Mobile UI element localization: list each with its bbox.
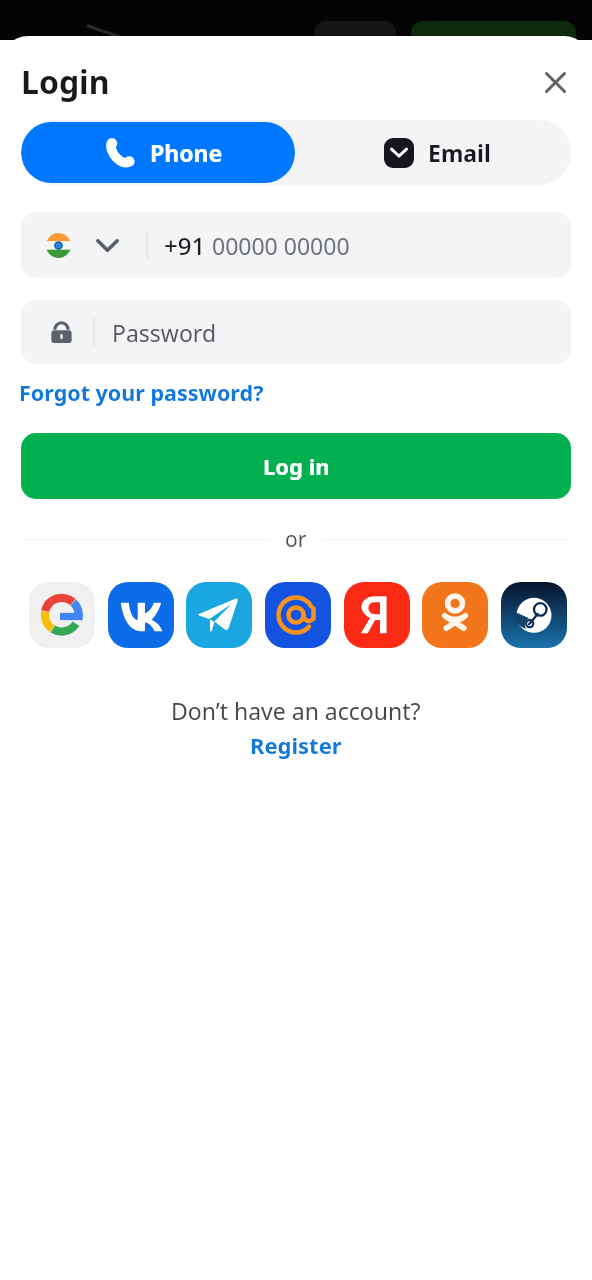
button[interactable]: +91 xyxy=(21,212,571,278)
button[interactable]: Close xyxy=(533,60,577,104)
button[interactable]: Sign in with VK xyxy=(108,582,174,648)
staticText: Don’t have an account? xyxy=(171,695,421,726)
staticText: +91 xyxy=(164,229,206,262)
button[interactable]: Email xyxy=(295,120,571,185)
staticText: Forgot your password? xyxy=(19,378,264,407)
staticText: 00000 00000 xyxy=(212,230,350,261)
button[interactable]: Phone xyxy=(21,122,295,183)
staticText: or xyxy=(285,525,307,554)
staticText: Password xyxy=(112,317,217,348)
button[interactable]: Sign in with Yandex xyxy=(344,582,410,648)
button[interactable]: Sign in with Mail.ru xyxy=(265,582,331,648)
button[interactable]: Sign in with Odnoklassniki xyxy=(422,582,488,648)
button[interactable]: Sign in with Steam xyxy=(501,582,567,648)
staticText: Phone xyxy=(150,137,223,168)
staticText: Email xyxy=(428,137,491,168)
button[interactable]: Register xyxy=(250,730,342,760)
staticText: Login xyxy=(21,60,110,104)
staticText: Log in xyxy=(263,451,330,481)
button[interactable]: Sign in with Google xyxy=(29,582,95,648)
button[interactable]: Sign in with Telegram xyxy=(186,582,252,648)
staticText: Register xyxy=(250,730,342,760)
button[interactable]: Log in xyxy=(21,433,571,499)
button[interactable]: Forgot your password? xyxy=(19,378,264,407)
button[interactable]: Password xyxy=(21,300,571,364)
